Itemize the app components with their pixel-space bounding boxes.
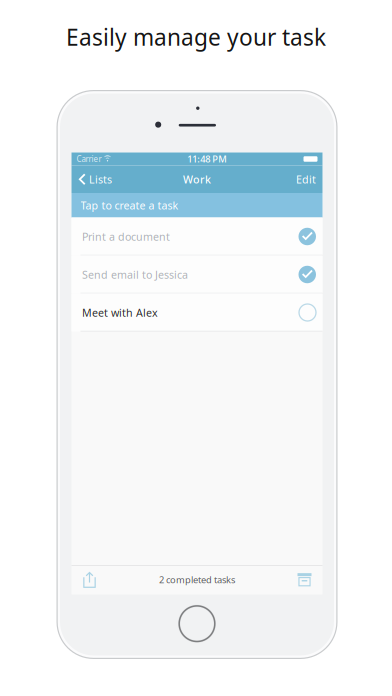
button[interactable]: Meet with Alex [71,293,322,331]
staticText: 11:48 PM [187,153,227,165]
button[interactable]: Edit [289,165,322,193]
button[interactable]: Share [76,565,102,594]
staticText: Easily manage your task [66,22,326,52]
staticText: Edit [296,172,316,186]
staticText: Tap to create a task [80,198,178,212]
button[interactable]: Lists [71,165,118,193]
staticText: Work [183,172,211,186]
staticText: Lists [89,172,112,186]
button[interactable]: Send email to Jessica [71,255,322,293]
button[interactable]: Tap to create a task [71,193,322,217]
staticText: Meet with Alex [82,305,158,320]
button[interactable]: Archive [291,565,317,594]
button[interactable]: Print a document [71,217,322,255]
staticText: Send email to Jessica [82,267,188,282]
staticText: 2 completed tasks [159,574,235,586]
staticText: Print a document [82,229,170,244]
staticText: Carrier [76,154,101,164]
